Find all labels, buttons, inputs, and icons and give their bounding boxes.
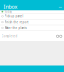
staticText: Finish the report — [4, 20, 28, 24]
button[interactable]: Sort — [60, 35, 62, 37]
button[interactable]: Water the plants — [0, 25, 64, 31]
staticText: Inbox — [3, 3, 17, 10]
button[interactable]: Edit — [56, 35, 59, 37]
button[interactable]: Finish the report — [0, 19, 64, 25]
staticText: Pick up parcel — [4, 14, 23, 18]
staticText: ··· — [58, 3, 61, 10]
staticText: Completed — [2, 34, 18, 38]
staticText: Today — [4, 10, 11, 13]
button[interactable]: More — [58, 3, 61, 10]
button[interactable]: Pick up parcel — [0, 14, 64, 19]
staticText: Water the plants — [4, 26, 26, 30]
